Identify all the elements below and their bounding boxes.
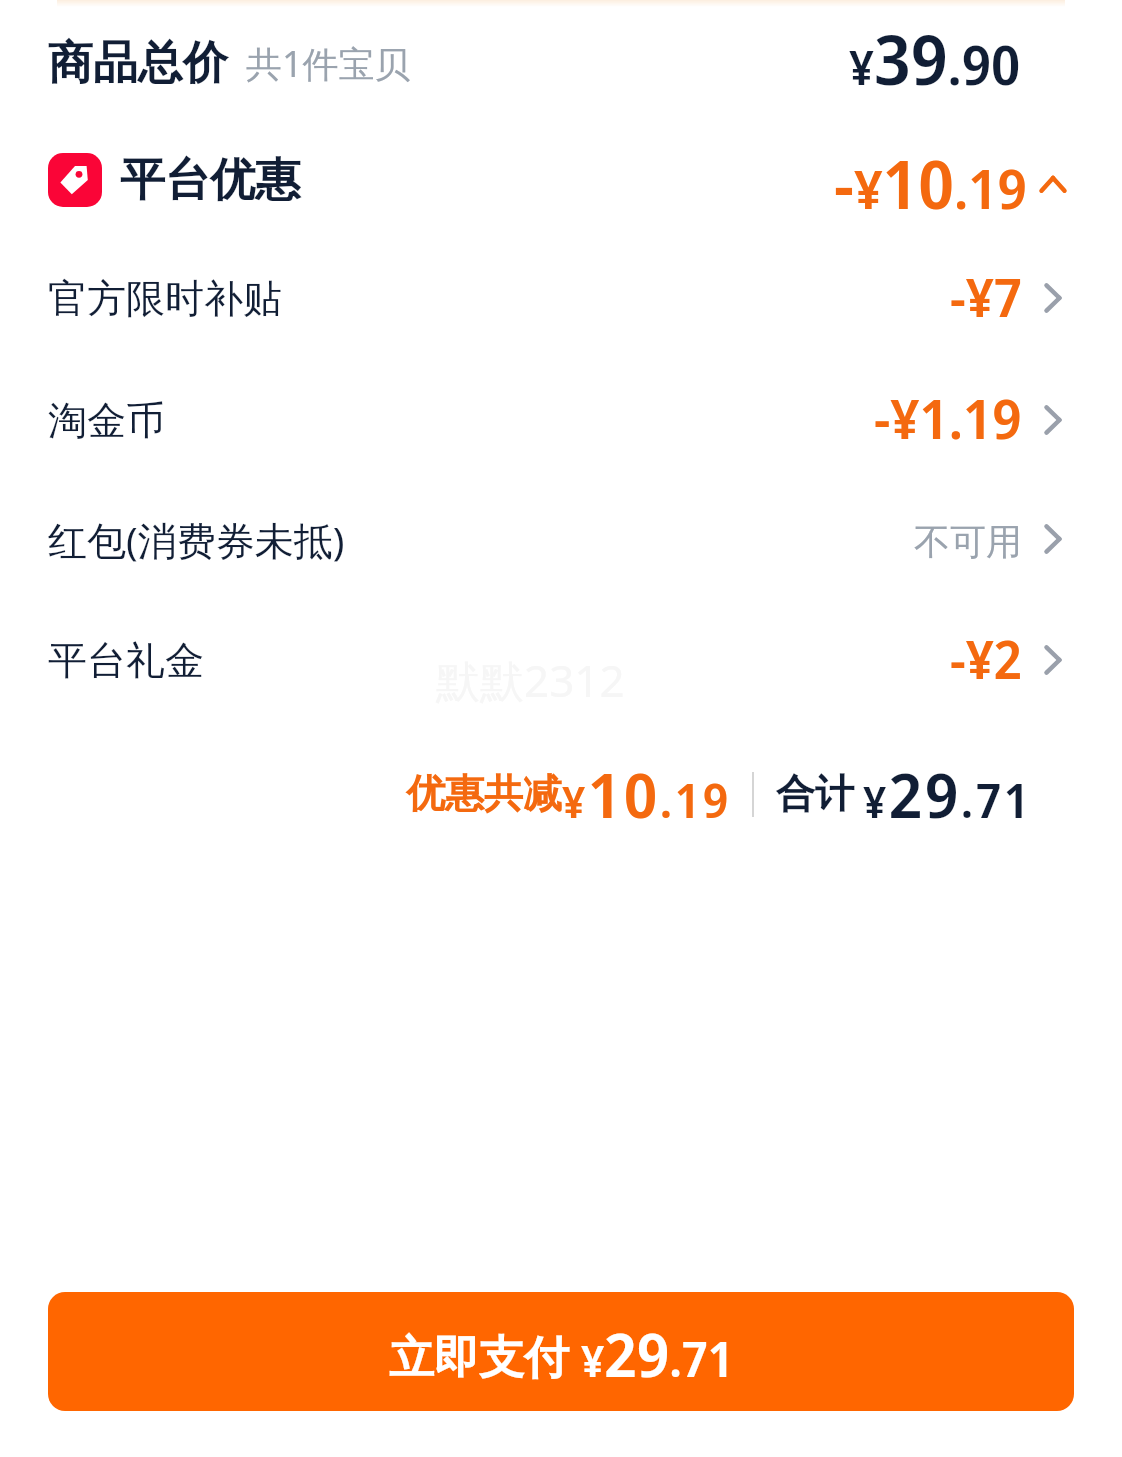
staticText: 淘金币 xyxy=(48,396,165,445)
staticText: ¥10.19 xyxy=(562,752,731,832)
staticText: 立即支付 xyxy=(389,1325,581,1386)
button[interactable]: 平台礼金 xyxy=(48,620,1061,700)
other: More xyxy=(1045,521,1061,557)
button[interactable]: 红包(消费券未抵) xyxy=(48,499,1061,579)
staticText: -¥2 xyxy=(950,623,1022,694)
button[interactable]: 立即支付 xyxy=(48,1292,1074,1411)
staticText: 官方限时补贴 xyxy=(48,274,282,323)
staticText: 平台礼金 xyxy=(48,636,204,685)
button[interactable]: 淘金币 xyxy=(48,380,1061,460)
button[interactable]: 平台优惠 xyxy=(48,140,1066,220)
other: More xyxy=(1045,402,1061,438)
staticText: -¥7 xyxy=(950,261,1022,332)
button[interactable]: 官方限时补贴 xyxy=(48,258,1061,338)
other: More xyxy=(1045,642,1061,678)
staticText: ¥39.90 xyxy=(849,12,1021,96)
staticText: 合计 xyxy=(776,769,854,818)
staticText: -¥1.19 xyxy=(874,381,1022,455)
other: More xyxy=(1045,280,1061,316)
staticText: 平台优惠 xyxy=(120,152,300,209)
staticText: 优惠共减 xyxy=(406,769,562,818)
other: Collapse xyxy=(1040,151,1066,209)
staticText: -¥10.19 xyxy=(834,138,1027,218)
staticText: 商品总价 xyxy=(48,35,228,92)
staticText: 共1件宝贝 xyxy=(246,39,411,88)
staticText: ¥29.71 xyxy=(863,752,1032,832)
staticText: 红包(消费券未抵) xyxy=(48,513,345,566)
staticText: 不可用 xyxy=(914,519,1022,564)
staticText: ¥29.71 xyxy=(581,1313,734,1395)
staticText: 默默2312 xyxy=(436,650,625,710)
